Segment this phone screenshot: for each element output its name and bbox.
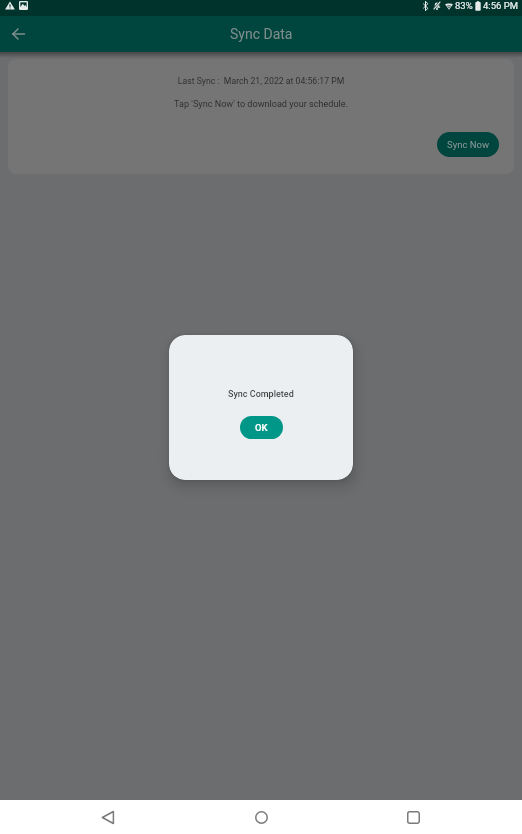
- staticText: 4:56 PM: [483, 0, 518, 11]
- staticText: Sync Data: [230, 26, 293, 42]
- staticText: Last Sync : March 21, 2022 at 04:56:17 P…: [8, 76, 514, 86]
- button[interactable]: Home: [244, 800, 278, 834]
- staticText: OK: [255, 422, 268, 433]
- button[interactable]: Sync Now: [437, 132, 499, 157]
- button[interactable]: Back: [91, 800, 125, 834]
- staticText: 83%: [455, 0, 473, 11]
- staticText: Tap 'Sync Now' to download your schedule…: [8, 99, 514, 110]
- staticText: Sync Now: [447, 139, 490, 150]
- staticText: Sync Completed: [228, 389, 294, 400]
- button[interactable]: Recent apps: [396, 800, 430, 834]
- button[interactable]: Navigate up: [3, 19, 33, 49]
- button[interactable]: OK: [240, 416, 283, 439]
